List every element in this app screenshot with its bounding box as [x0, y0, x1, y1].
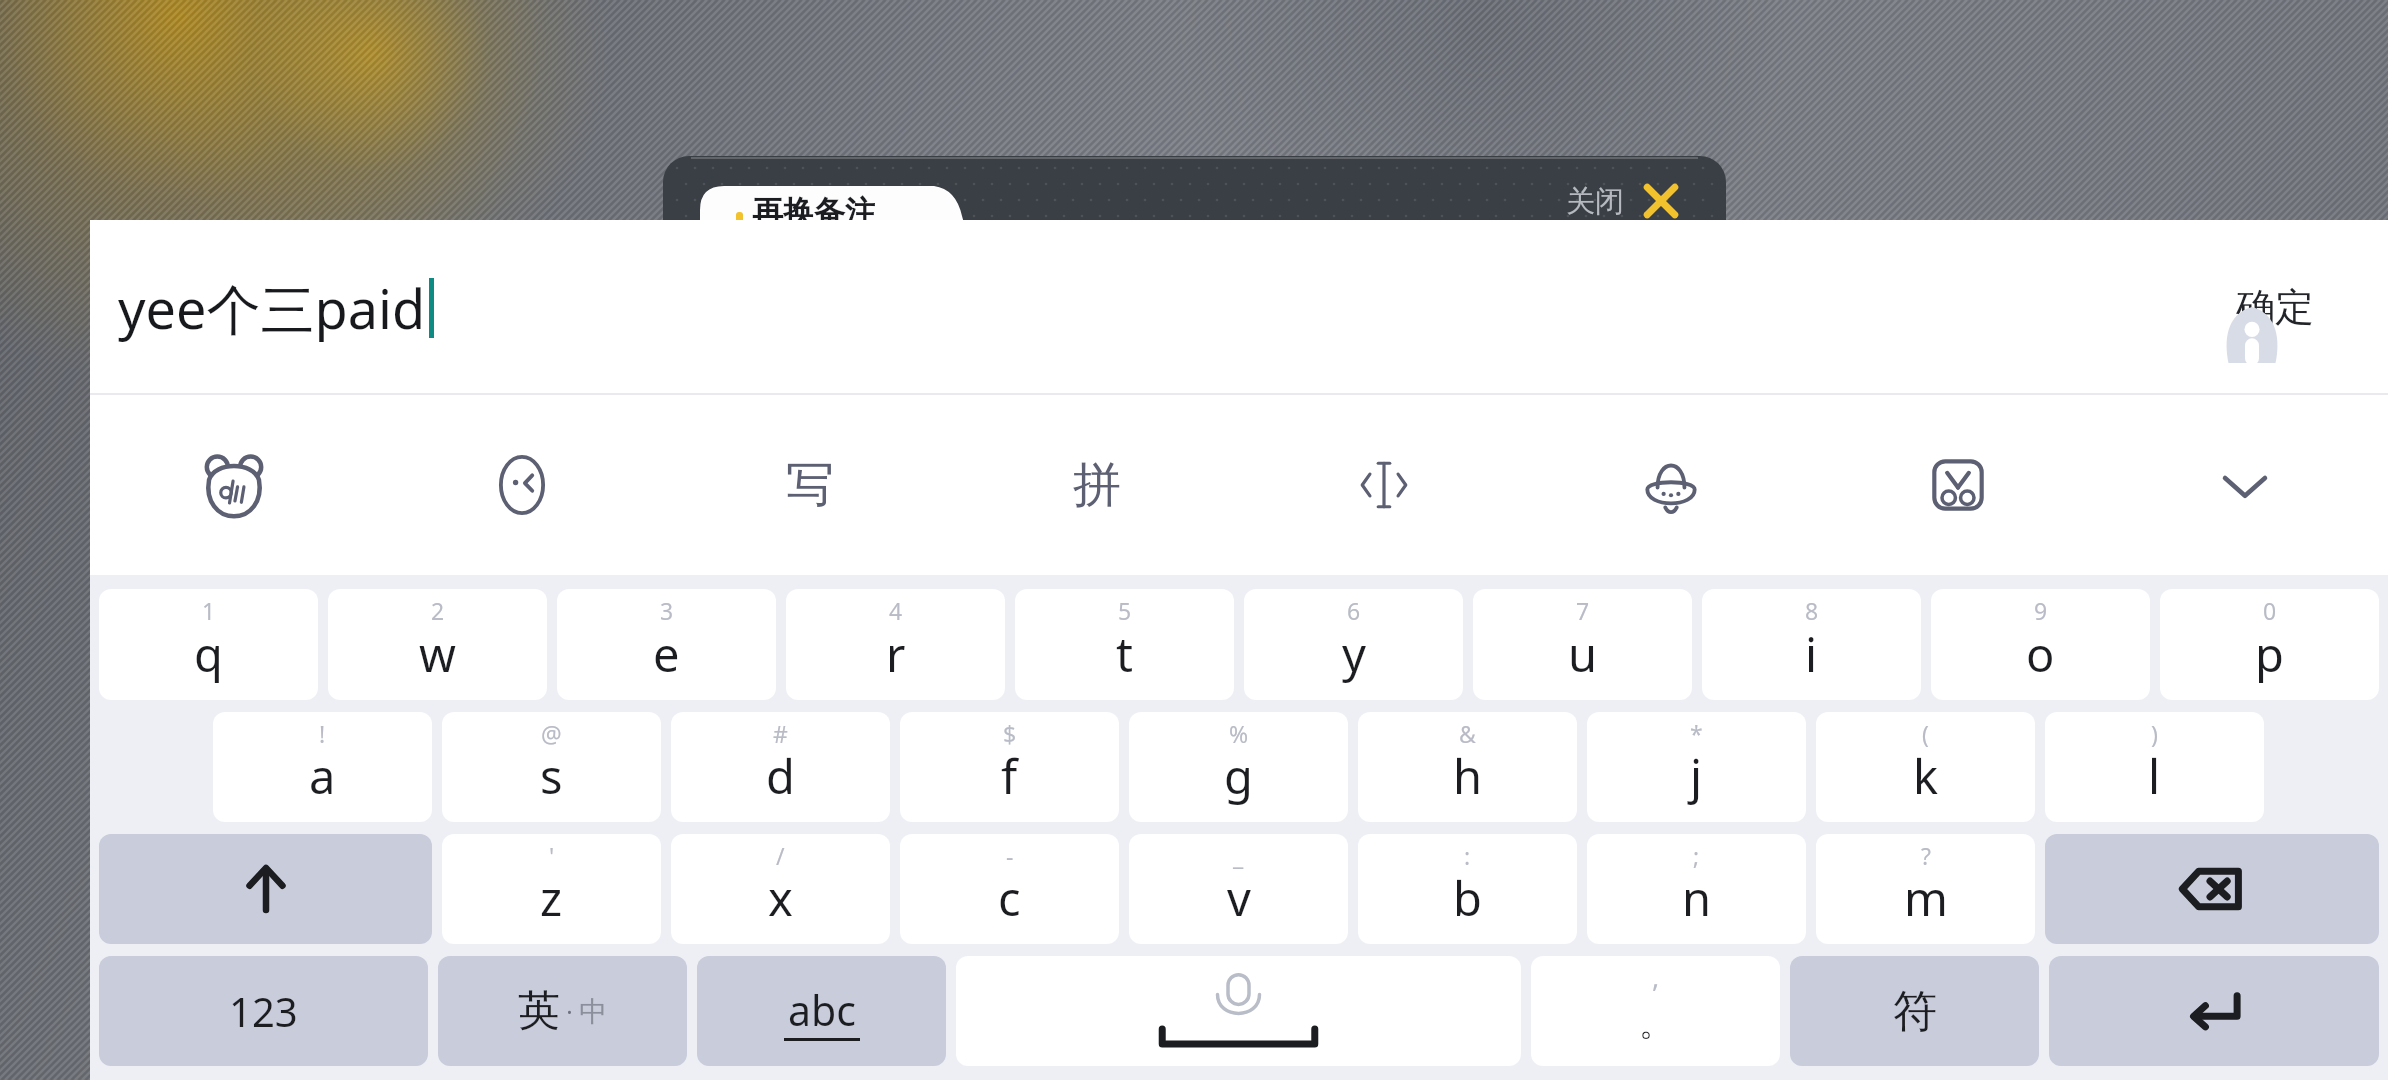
- button[interactable]: 回车: [2049, 956, 2379, 1066]
- staticText: p: [2255, 622, 2284, 686]
- button[interactable]: 再换备注: [752, 193, 876, 232]
- button[interactable]: -: [900, 834, 1119, 944]
- button[interactable]: 确定: [2220, 271, 2330, 344]
- button[interactable]: 0: [2160, 589, 2379, 700]
- staticText: /: [776, 840, 785, 871]
- button[interactable]: 5: [1015, 589, 1234, 700]
- staticText: y: [1342, 622, 1366, 686]
- button[interactable]: 7: [1473, 589, 1692, 700]
- button[interactable]: 符: [1790, 956, 2039, 1066]
- staticText: g: [1224, 744, 1253, 808]
- staticText: :: [1464, 840, 1471, 871]
- button[interactable]: &: [1358, 712, 1577, 822]
- button[interactable]: 1: [99, 589, 318, 700]
- staticText: 确定: [2236, 283, 2314, 332]
- button[interactable]: 手写输入: [666, 395, 953, 575]
- staticText: _: [1233, 840, 1244, 871]
- staticText: !: [319, 718, 326, 749]
- button[interactable]: 8: [1702, 589, 1921, 700]
- button[interactable]: !: [213, 712, 432, 822]
- staticText: 英: [518, 985, 560, 1038]
- button[interactable]: ): [2045, 712, 2264, 822]
- staticText: 中: [579, 994, 607, 1029]
- staticText: w: [419, 622, 456, 686]
- staticText: %: [1229, 718, 1249, 749]
- button[interactable]: 6: [1244, 589, 1463, 700]
- button[interactable]: 9: [1931, 589, 2150, 700]
- staticText: j: [1690, 744, 1703, 808]
- button[interactable]: (: [1816, 712, 2035, 822]
- staticText: x: [768, 866, 793, 930]
- staticText: 4: [889, 595, 903, 626]
- button[interactable]: ?: [1816, 834, 2035, 944]
- staticText: e: [653, 622, 680, 686]
- button[interactable]: 4: [786, 589, 1005, 700]
- button[interactable]: ,: [1531, 956, 1780, 1066]
- button[interactable]: 3: [557, 589, 776, 700]
- staticText: o: [2026, 622, 2055, 686]
- staticText: s: [540, 744, 563, 808]
- button[interactable]: 上档: [99, 834, 432, 944]
- staticText: &: [1459, 718, 1476, 749]
- staticText: ·: [560, 995, 579, 1028]
- staticText: 8: [1805, 595, 1819, 626]
- button[interactable]: 皮肤: [1527, 395, 1814, 575]
- button[interactable]: 退格: [2045, 834, 2379, 944]
- button[interactable]: ': [442, 834, 661, 944]
- button[interactable]: 拼音输入: [953, 395, 1240, 575]
- button[interactable]: abc: [697, 956, 946, 1066]
- staticText: v: [1227, 866, 1251, 930]
- button[interactable]: :: [1358, 834, 1577, 944]
- staticText: @: [541, 718, 562, 749]
- button[interactable]: 表情: [378, 395, 666, 575]
- button[interactable]: @: [442, 712, 661, 822]
- button[interactable]: 2: [328, 589, 547, 700]
- staticText: #: [773, 718, 788, 749]
- staticText: r: [886, 622, 906, 686]
- button[interactable]: 英: [438, 956, 687, 1066]
- button[interactable]: 123: [99, 956, 428, 1066]
- staticText: -: [1006, 840, 1014, 871]
- button[interactable]: 移动光标: [1240, 395, 1527, 575]
- staticText: 拼: [1073, 455, 1121, 515]
- staticText: m: [1904, 866, 1948, 930]
- staticText: 。: [1639, 1002, 1673, 1045]
- staticText: (: [1922, 718, 1929, 749]
- staticText: 3: [660, 595, 674, 626]
- button[interactable]: %: [1129, 712, 1348, 822]
- staticText: i: [1805, 622, 1818, 686]
- button[interactable]: 剪贴板: [1814, 395, 2101, 575]
- staticText: l: [2148, 744, 2161, 808]
- button[interactable]: 关闭: [1566, 178, 1684, 224]
- button[interactable]: /: [671, 834, 890, 944]
- staticText: q: [194, 622, 223, 686]
- staticText: yee个三paid: [118, 271, 426, 345]
- staticText: b: [1453, 866, 1482, 930]
- button[interactable]: 百度输入法: [90, 395, 378, 575]
- staticText: ,: [1652, 958, 1660, 995]
- staticText: u: [1568, 622, 1598, 686]
- button[interactable]: ;: [1587, 834, 1806, 944]
- staticText: ): [2151, 718, 2158, 749]
- button[interactable]: *: [1587, 712, 1806, 822]
- button[interactable]: 收起键盘: [2101, 395, 2388, 575]
- staticText: 关闭: [1566, 183, 1624, 220]
- staticText: 7: [1576, 595, 1590, 626]
- staticText: 123: [229, 984, 298, 1038]
- button[interactable]: 空格: [956, 956, 1521, 1066]
- staticText: n: [1682, 866, 1712, 930]
- staticText: 再换备注: [752, 193, 876, 232]
- staticText: 1: [202, 595, 216, 626]
- button[interactable]: _: [1129, 834, 1348, 944]
- staticText: h: [1453, 744, 1483, 808]
- staticText: *: [1690, 718, 1703, 749]
- staticText: ': [549, 840, 555, 871]
- staticText: z: [540, 866, 563, 930]
- staticText: 2: [431, 595, 445, 626]
- staticText: c: [998, 866, 1021, 930]
- staticText: 符: [1893, 984, 1937, 1039]
- button[interactable]: #: [671, 712, 890, 822]
- button[interactable]: $: [900, 712, 1119, 822]
- staticText: ;: [1693, 840, 1700, 871]
- staticText: t: [1116, 622, 1133, 686]
